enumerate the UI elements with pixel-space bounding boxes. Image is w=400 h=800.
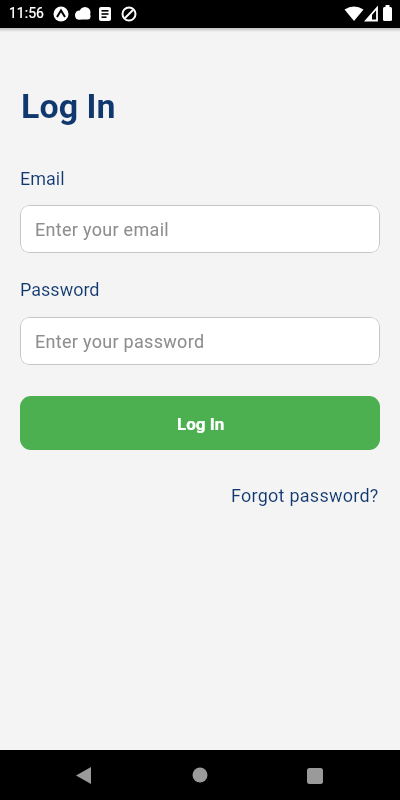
button[interactable] — [0, 750, 134, 800]
button[interactable]: Enter your email — [20, 205, 380, 253]
button[interactable]: Forgot password? — [231, 485, 379, 506]
staticText: Email — [20, 168, 65, 189]
button[interactable]: Enter your password — [20, 317, 380, 365]
button[interactable] — [134, 750, 267, 800]
staticText: 11:56 — [9, 5, 44, 21]
staticText: Enter your password — [35, 331, 205, 352]
staticText: Log In — [177, 414, 225, 434]
staticText: Log In — [21, 86, 116, 126]
staticText: Enter your email — [35, 219, 169, 240]
staticText: Password — [20, 279, 100, 300]
button[interactable]: Log In — [20, 396, 380, 450]
button[interactable] — [267, 750, 400, 800]
